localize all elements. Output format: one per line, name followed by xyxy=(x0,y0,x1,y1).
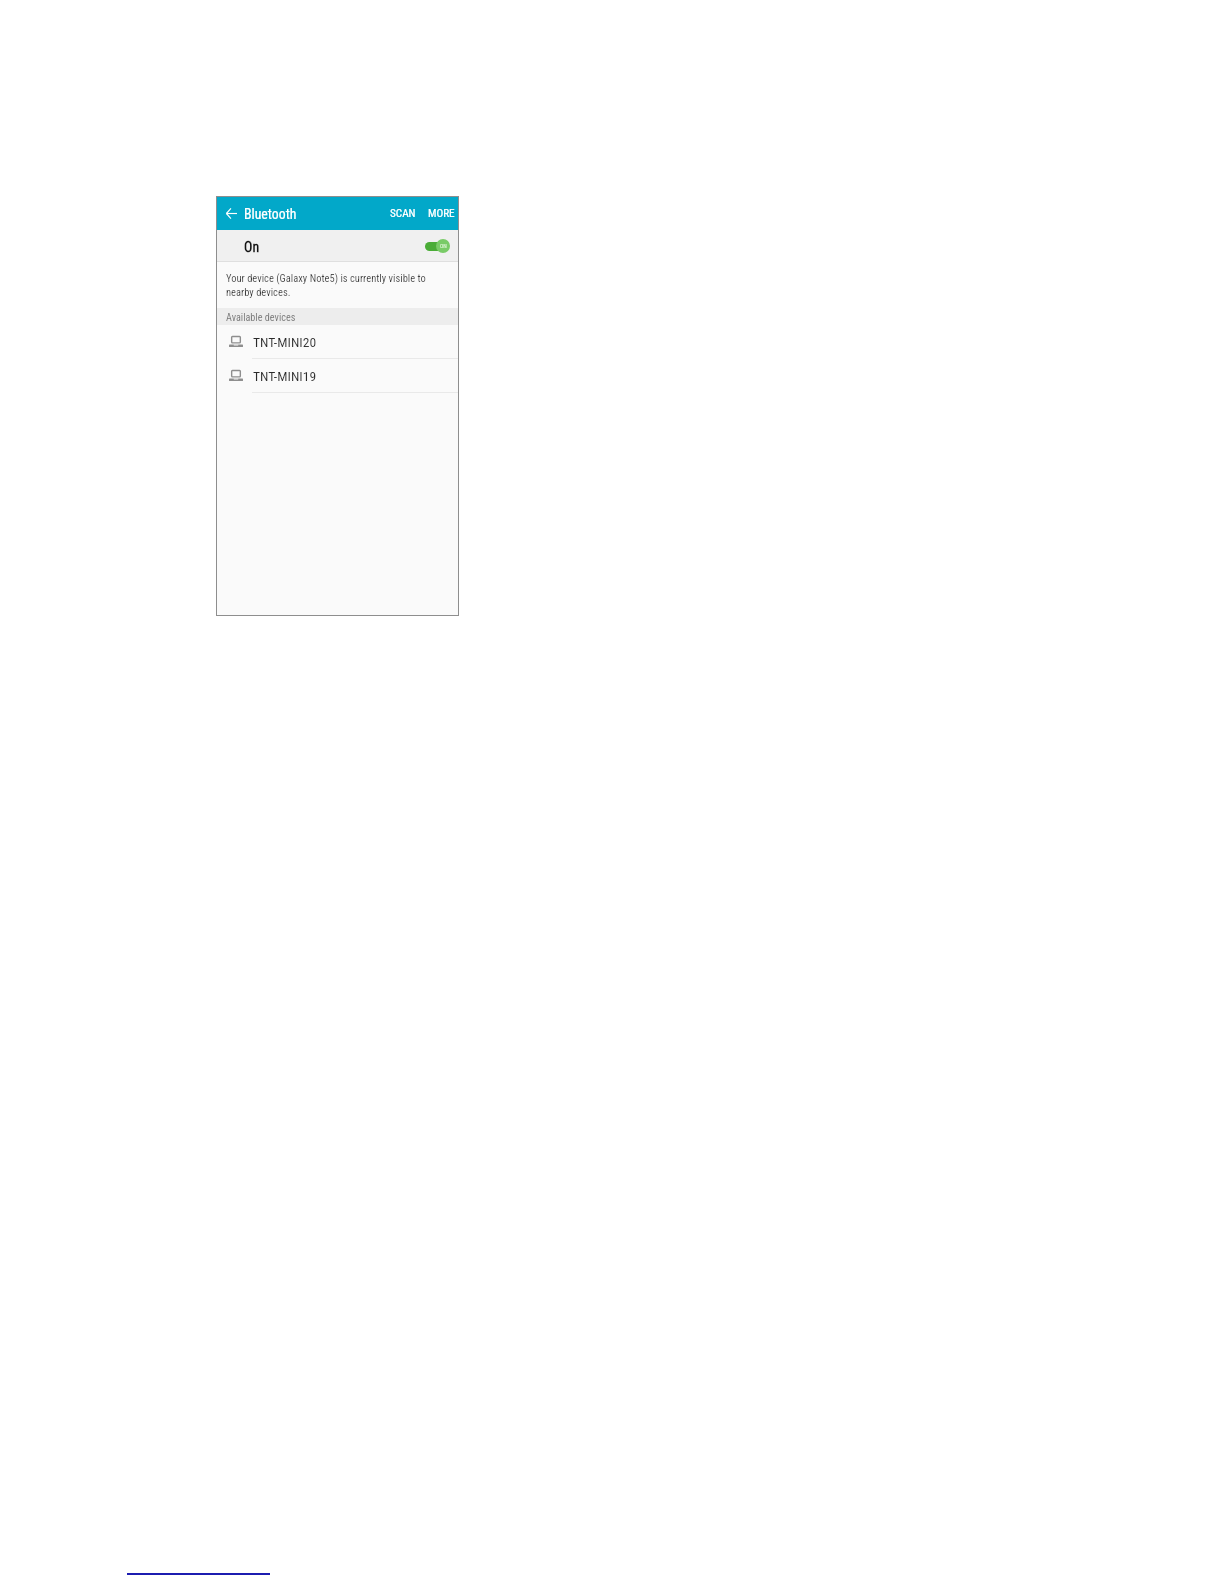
staticText: On xyxy=(244,239,260,255)
button[interactable]: TNT-MINI19 xyxy=(217,359,458,392)
staticText: TNT-MINI20 xyxy=(253,334,317,350)
staticText: SCAN xyxy=(390,207,416,220)
button[interactable]: SCAN xyxy=(386,203,420,224)
staticText: MORE xyxy=(428,207,455,220)
button[interactable]: On xyxy=(217,230,458,261)
staticText: ON xyxy=(440,243,447,250)
button[interactable]: TNT-MINI20 xyxy=(217,325,458,358)
staticText: TNT-MINI19 xyxy=(253,368,317,384)
staticText: Available devices xyxy=(226,312,296,324)
button[interactable]: Navigate up xyxy=(218,202,244,225)
button[interactable]: Bluetooth toggle, on xyxy=(425,237,450,255)
button[interactable]: MORE xyxy=(424,203,459,224)
staticText: Your device (Galaxy Note5) is currently … xyxy=(226,272,426,299)
staticText: Bluetooth xyxy=(244,206,297,222)
